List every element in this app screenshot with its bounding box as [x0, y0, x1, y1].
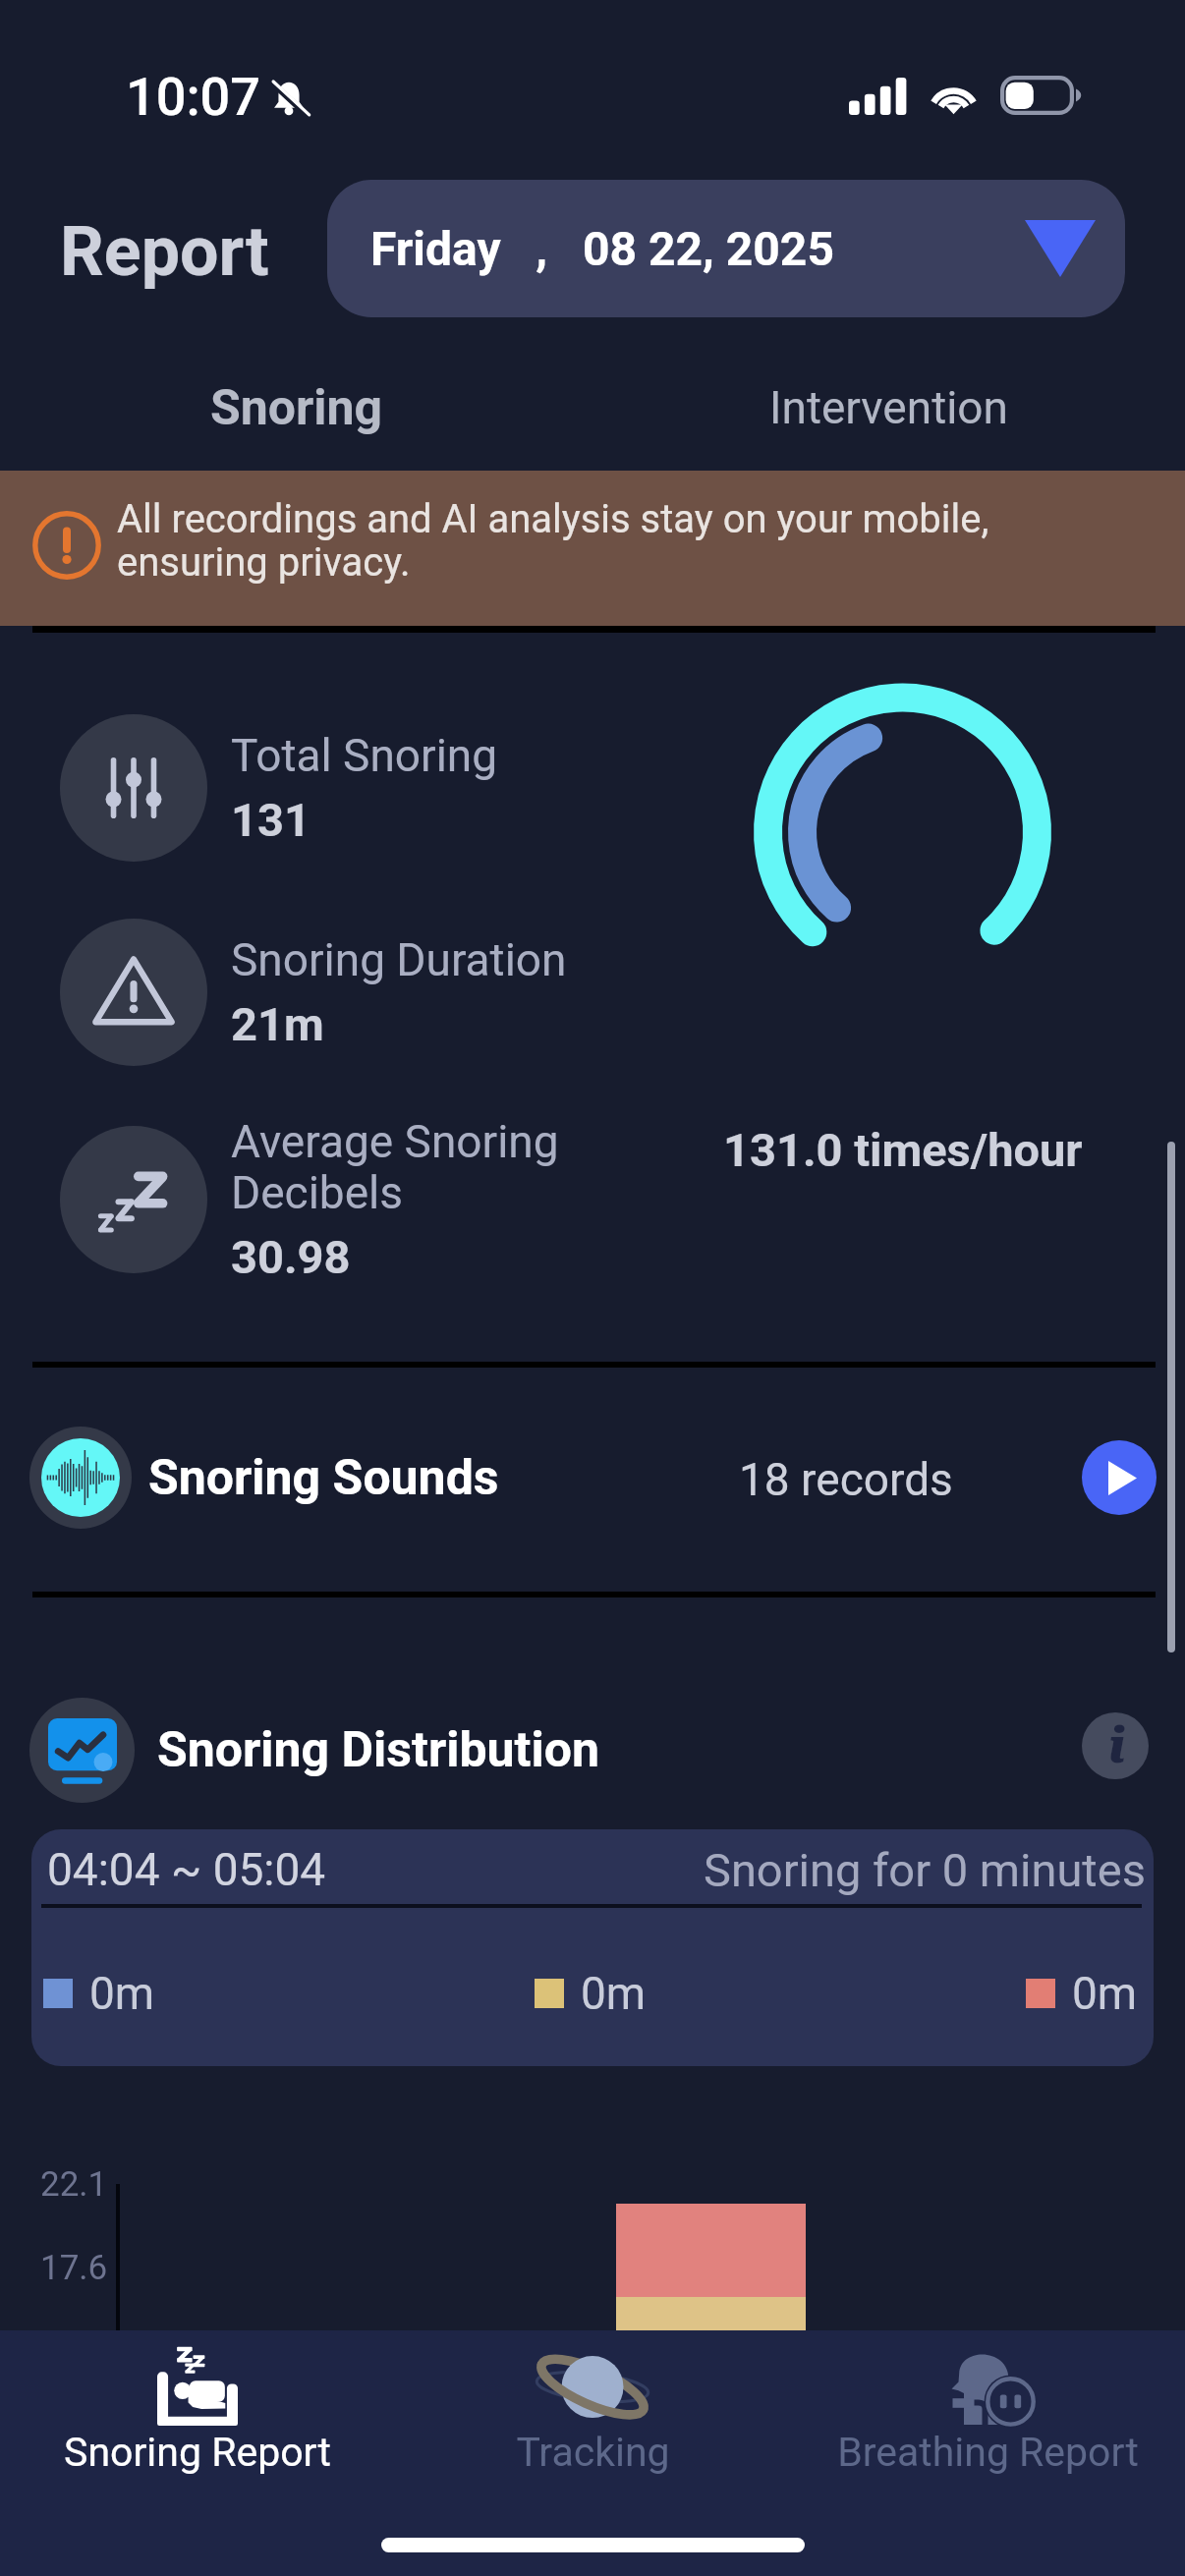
staticText: i	[1108, 1715, 1126, 1775]
staticText: Breathing Report	[837, 2429, 1139, 2476]
staticText: 22.1	[40, 2164, 108, 2205]
staticText: Snoring	[210, 379, 383, 437]
staticText: Intervention	[769, 381, 1009, 434]
staticText: Report	[60, 211, 269, 292]
staticText: 0m	[581, 1967, 647, 2020]
staticText: Average Snoring Decibels	[231, 1115, 559, 1219]
staticText: 131.0 times/hour	[723, 1123, 1083, 1177]
staticText: Snoring Sounds	[148, 1449, 499, 1507]
button[interactable]: Snoring Report	[0, 2342, 395, 2480]
staticText: 0m	[89, 1967, 155, 2020]
staticText: 17.6	[40, 2248, 108, 2288]
staticText: 10:07	[126, 66, 261, 128]
button[interactable]: Tracking	[395, 2342, 790, 2480]
staticText: 131	[231, 793, 310, 847]
staticText: Total Snoring	[231, 729, 498, 782]
button[interactable]: Snoring	[0, 369, 592, 446]
button[interactable]: Breathing Report	[790, 2342, 1185, 2480]
staticText: Friday , 08 22, 2025	[370, 221, 834, 276]
staticText: Tracking	[516, 2429, 670, 2476]
staticText: All recordings and AI analysis stay on y…	[117, 496, 1001, 586]
staticText: 21m	[231, 997, 324, 1051]
staticText: 04:04 ~ 05:04	[47, 1843, 326, 1896]
staticText: 0m	[1072, 1967, 1138, 2020]
staticText: 18 records	[739, 1453, 953, 1506]
button[interactable]: Info	[1082, 1712, 1149, 1779]
button[interactable]: Friday , 08 22, 2025	[327, 180, 1125, 317]
staticText: Snoring Distribution	[157, 1721, 599, 1779]
staticText: Snoring Duration	[231, 933, 567, 986]
staticText: Snoring for 0 minutes	[704, 1843, 1146, 1897]
staticText: Snoring Report	[64, 2429, 331, 2476]
button[interactable]: Intervention	[592, 369, 1185, 446]
button[interactable]: Play snoring sounds	[1082, 1440, 1157, 1515]
staticText: 30.98	[231, 1230, 351, 1284]
